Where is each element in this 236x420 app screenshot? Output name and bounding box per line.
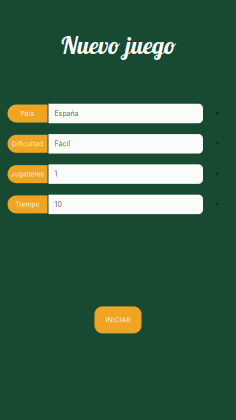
button[interactable]: Dificultad [7,134,231,154]
staticText: 10 [54,200,61,209]
staticText: España [54,109,78,118]
staticText: Tiempo [15,200,39,208]
staticText: Fácil [54,140,70,148]
button[interactable]: Tiempo [7,194,231,214]
staticText: Nuevo juego [60,30,176,60]
staticText: Dificultad [12,140,43,148]
staticText: 1 [54,170,57,178]
button[interactable]: País [7,103,231,123]
staticText: Jugadores [10,170,44,178]
button[interactable]: INICIAR [94,306,141,333]
button[interactable]: Jugadores [7,164,231,184]
staticText: INICIAR [105,316,130,324]
staticText: País [20,109,34,118]
